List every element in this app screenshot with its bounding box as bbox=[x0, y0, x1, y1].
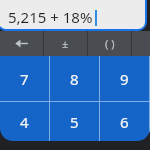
button[interactable]: 9 bbox=[100, 56, 149, 101]
button[interactable]: back bbox=[0, 31, 43, 56]
staticText: ( ) bbox=[105, 36, 115, 51]
button[interactable]: 6 bbox=[100, 102, 149, 141]
staticText: 9 bbox=[120, 69, 129, 89]
button[interactable]: parentheses bbox=[88, 31, 131, 56]
staticText: ± bbox=[62, 36, 69, 51]
button[interactable]: 5,215 + 18% bbox=[0, 0, 145, 29]
staticText: 7 bbox=[20, 69, 29, 89]
button[interactable]: 8 bbox=[50, 56, 99, 101]
staticText: 5 bbox=[70, 112, 79, 132]
button[interactable]: 4 bbox=[0, 102, 49, 141]
staticText: 4 bbox=[20, 112, 29, 132]
staticText: 8 bbox=[70, 69, 79, 89]
button[interactable]: plus minus bbox=[44, 31, 87, 56]
staticText: 6 bbox=[120, 112, 129, 132]
staticText: 5,215 + 18% bbox=[8, 7, 93, 27]
button[interactable]: 7 bbox=[0, 56, 49, 101]
button[interactable]: 5 bbox=[50, 102, 99, 141]
